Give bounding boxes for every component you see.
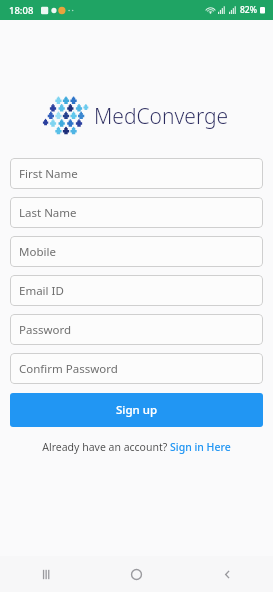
staticText: Already have an account? Sign in Here bbox=[42, 440, 231, 454]
staticText: 18:08 bbox=[9, 4, 34, 17]
button[interactable]: Already have an account? Sign in Here bbox=[0, 440, 273, 454]
button[interactable]: Mobile bbox=[10, 236, 263, 267]
button[interactable]: Sign up bbox=[10, 393, 263, 427]
staticText: Password bbox=[19, 322, 72, 338]
button[interactable]: Recent apps bbox=[0, 556, 91, 592]
staticText: First Name bbox=[19, 166, 78, 182]
staticText: 82% bbox=[240, 4, 257, 16]
button[interactable]: Email ID bbox=[10, 275, 263, 306]
staticText: Sign up bbox=[116, 402, 158, 418]
button[interactable]: Back bbox=[182, 556, 273, 592]
staticText: Mobile bbox=[19, 244, 56, 260]
staticText: MedConverge bbox=[94, 102, 229, 131]
button[interactable]: Confirm Password bbox=[10, 353, 263, 384]
staticText: Last Name bbox=[19, 205, 77, 221]
staticText: Confirm Password bbox=[19, 361, 118, 377]
button[interactable]: First Name bbox=[10, 158, 263, 189]
button[interactable]: Last Name bbox=[10, 197, 263, 228]
staticText: Email ID bbox=[19, 283, 64, 299]
button[interactable]: Home bbox=[91, 556, 182, 592]
button[interactable]: Password bbox=[10, 314, 263, 345]
